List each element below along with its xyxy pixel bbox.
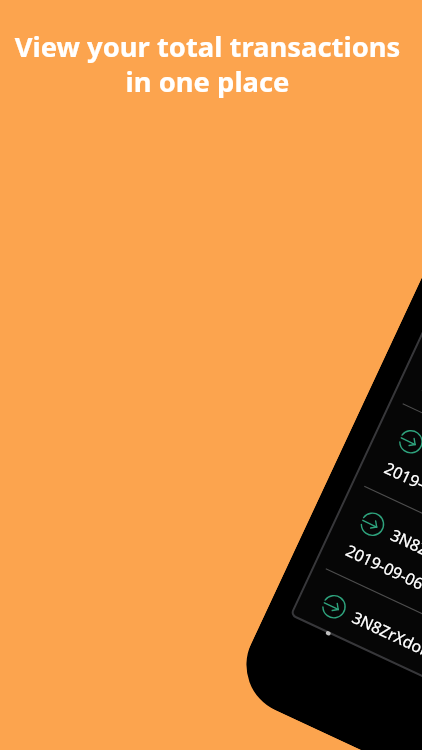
button[interactable]: 3N8ZrXdobDNc: [391, 315, 422, 484]
staticText: 3N8ZrXdobDNc: [387, 524, 422, 593]
staticText: 2019-09-06: [311, 622, 389, 661]
button[interactable]: 3N8ZrXdobDNc: [290, 563, 422, 702]
staticText: 2019-09-06: [342, 539, 422, 595]
staticText: View your total transactions in one plac…: [0, 28, 415, 100]
staticText: 3N8ZrXdobDNc: [349, 606, 422, 676]
button[interactable]: 3N8ZrXdobDNc: [314, 480, 422, 649]
button[interactable]: 3N8ZrXdobDNc: [353, 398, 422, 566]
staticText: 2019-09-06: [381, 457, 422, 512]
staticText: 2019-09-06: [419, 374, 422, 430]
